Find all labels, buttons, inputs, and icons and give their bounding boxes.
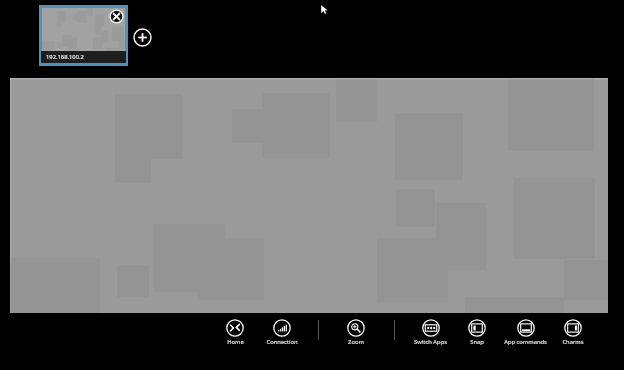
button[interactable]: Zoom [330,317,382,346]
button[interactable]: Charms [547,317,599,346]
staticText: App commands [504,338,547,346]
button[interactable]: Switch Apps [404,317,456,346]
staticText: Home [227,338,244,346]
button[interactable]: 192.168.100.2 [39,5,128,66]
staticText: Snap [470,338,484,346]
button[interactable]: Snap [451,317,503,346]
staticText: 192.168.100.2 [46,53,84,61]
staticText: Charms [562,338,584,346]
staticText: Switch Apps [414,338,447,346]
staticText: Zoom [348,338,364,346]
button[interactable]: Close [108,8,125,25]
staticText: Connection [266,338,298,346]
button[interactable]: Home [209,317,261,346]
button[interactable]: Add connection [133,28,152,47]
button[interactable]: App commands [499,317,551,346]
button[interactable]: Connection [256,317,308,346]
